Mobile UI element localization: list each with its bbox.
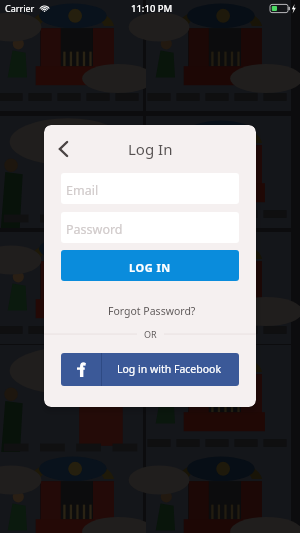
staticText: OR — [144, 328, 157, 340]
button[interactable]: Password — [61, 212, 239, 243]
button[interactable]: Log in with Facebook — [61, 353, 239, 386]
staticText: Log in with Facebook — [117, 362, 222, 376]
button[interactable]: Email — [61, 173, 239, 204]
staticText: 11:10 PM — [131, 2, 173, 15]
button[interactable]: Back — [50, 136, 76, 162]
staticText: Password — [66, 221, 123, 238]
staticText: Email — [66, 182, 99, 199]
button[interactable]: LOG IN — [61, 250, 239, 281]
staticText: LOG IN — [129, 260, 171, 275]
staticText: Log In — [128, 139, 173, 159]
button[interactable]: Forgot Password? — [106, 302, 194, 320]
staticText: Carrier — [5, 2, 35, 14]
staticText: Forgot Password? — [108, 304, 196, 318]
